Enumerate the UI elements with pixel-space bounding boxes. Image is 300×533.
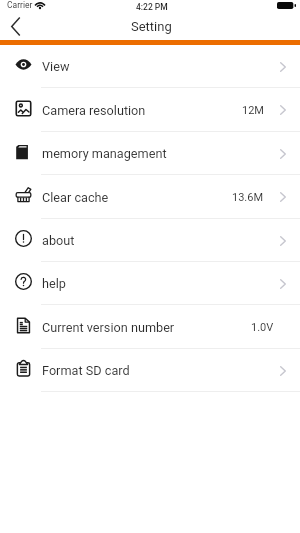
button[interactable]: Current version number xyxy=(0,305,300,349)
button[interactable]: Camera resolution xyxy=(0,88,300,132)
staticText: Camera resolution xyxy=(42,103,146,118)
button[interactable]: Clear cache xyxy=(0,175,300,219)
staticText: help xyxy=(42,276,66,291)
staticText: Clear cache xyxy=(42,190,109,205)
staticText: Carrier xyxy=(7,0,33,10)
button[interactable]: Back xyxy=(0,16,32,40)
staticText: about xyxy=(42,233,75,248)
staticText: 1.0V xyxy=(251,321,274,334)
staticText: View xyxy=(42,59,70,74)
button[interactable]: View xyxy=(0,45,300,88)
staticText: 12M xyxy=(242,104,264,117)
button[interactable]: Format SD card xyxy=(0,349,300,392)
staticText: Current version number xyxy=(42,320,175,335)
button[interactable]: about xyxy=(0,219,300,262)
staticText: 13.6M xyxy=(232,191,264,204)
button[interactable]: memory management xyxy=(0,132,300,175)
staticText: 4:22 PM xyxy=(136,2,168,12)
button[interactable]: help xyxy=(0,262,300,305)
staticText: memory management xyxy=(42,146,167,161)
staticText: Format SD card xyxy=(42,363,130,378)
staticText: Setting xyxy=(131,19,172,34)
